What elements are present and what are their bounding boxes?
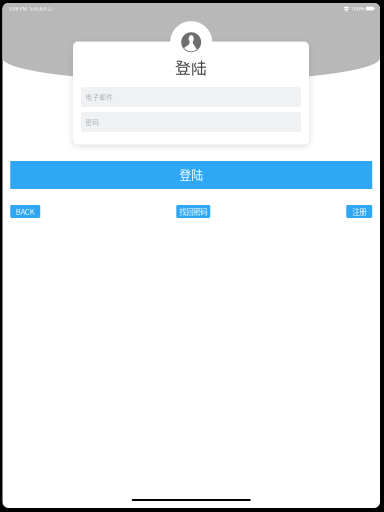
staticText: 登陆 [179,166,203,184]
staticText: 100% [351,5,364,12]
button[interactable]: BACK [10,205,40,218]
staticText: 电子邮件 [85,92,113,102]
button[interactable]: 登陆 [10,161,372,189]
button[interactable]: 找回密码 [176,205,210,218]
button[interactable]: 注册 [346,205,372,218]
staticText: 登陆 [175,55,207,78]
staticText: 注册 [352,206,366,217]
staticText: BACK [16,206,35,217]
staticText: 密码 [85,117,99,127]
staticText: 5:08 PM Sun Jun 27 [8,5,53,12]
staticText: 找回密码 [179,206,207,217]
